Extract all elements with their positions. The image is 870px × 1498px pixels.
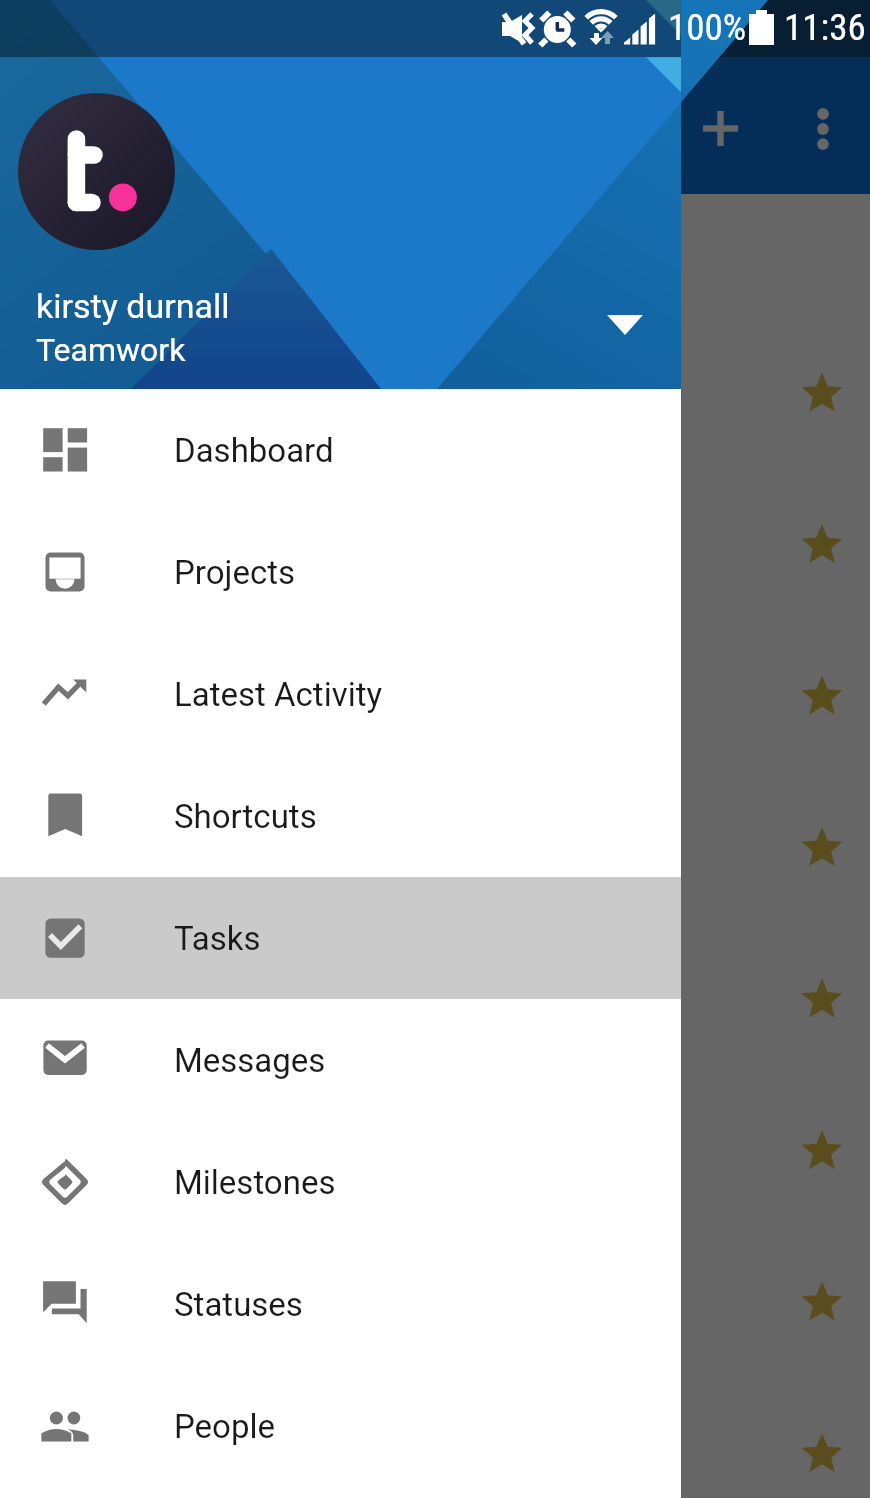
- button[interactable]: Milestones: [0, 1121, 681, 1243]
- staticText: Projects: [174, 553, 295, 592]
- staticText: Milestones: [174, 1163, 336, 1202]
- staticText: Shortcuts: [174, 797, 317, 836]
- button[interactable]: Shortcuts: [0, 755, 681, 877]
- staticText: Dashboard: [174, 431, 334, 470]
- button[interactable]: Statuses: [0, 1243, 681, 1365]
- button[interactable]: Profile: [18, 93, 175, 250]
- button[interactable]: Projects: [0, 511, 681, 633]
- button[interactable]: Switch account: [592, 292, 658, 358]
- staticText: People: [174, 1407, 275, 1446]
- button[interactable]: Add: [676, 60, 765, 197]
- button[interactable]: Latest Activity: [0, 633, 681, 755]
- staticText: 100%: [668, 6, 747, 49]
- staticText: kirsty durnall: [36, 286, 230, 326]
- staticText: Tasks: [174, 919, 261, 958]
- staticText: Messages: [174, 1041, 326, 1080]
- button[interactable]: Dashboard: [0, 389, 681, 511]
- button[interactable]: Messages: [0, 999, 681, 1121]
- staticText: Latest Activity: [174, 675, 383, 714]
- button[interactable]: Tasks: [0, 877, 681, 999]
- button[interactable]: People: [0, 1365, 681, 1487]
- button[interactable]: More options: [776, 60, 870, 197]
- staticText: Teamwork: [36, 331, 186, 369]
- staticText: 11:36: [784, 6, 866, 49]
- staticText: Statuses: [174, 1285, 303, 1324]
